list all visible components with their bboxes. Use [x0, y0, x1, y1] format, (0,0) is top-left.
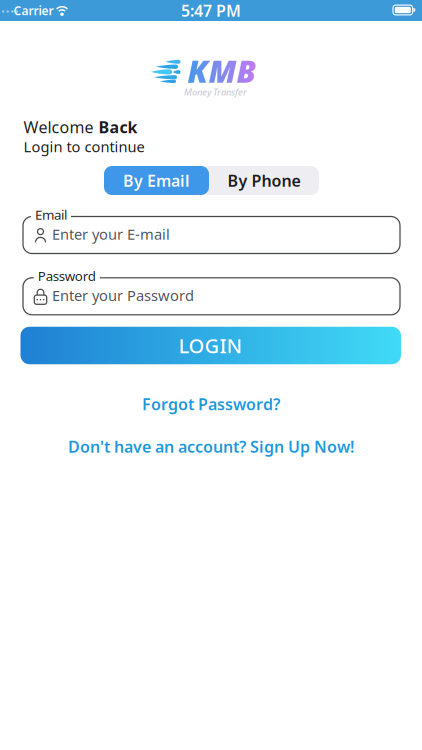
button[interactable]: LOGIN	[20, 327, 401, 364]
staticText: Money Transfer	[184, 86, 247, 98]
staticText: 5:47 PM	[181, 0, 241, 21]
button[interactable]: Don't have an account? Sign Up Now!	[68, 436, 354, 457]
button[interactable]: By Phone	[209, 166, 319, 195]
staticText: Back	[98, 116, 137, 138]
staticText: LOGIN	[179, 332, 243, 359]
staticText: Password	[38, 267, 96, 285]
staticText: Enter your Password	[52, 286, 194, 305]
staticText: Forgot Password?	[142, 393, 280, 415]
staticText: Login to continue	[23, 137, 144, 156]
staticText: Email	[35, 206, 67, 223]
button[interactable]: By Email	[104, 166, 209, 195]
staticText: Enter your E-mail	[52, 224, 170, 244]
staticText: By Email	[123, 170, 190, 191]
staticText: Welcome	[23, 116, 93, 138]
staticText: Don't have an account? Sign Up Now!	[68, 436, 354, 457]
staticText: By Phone	[227, 170, 300, 191]
button[interactable]: Forgot Password?	[142, 393, 280, 415]
staticText: Carrier	[13, 2, 53, 18]
